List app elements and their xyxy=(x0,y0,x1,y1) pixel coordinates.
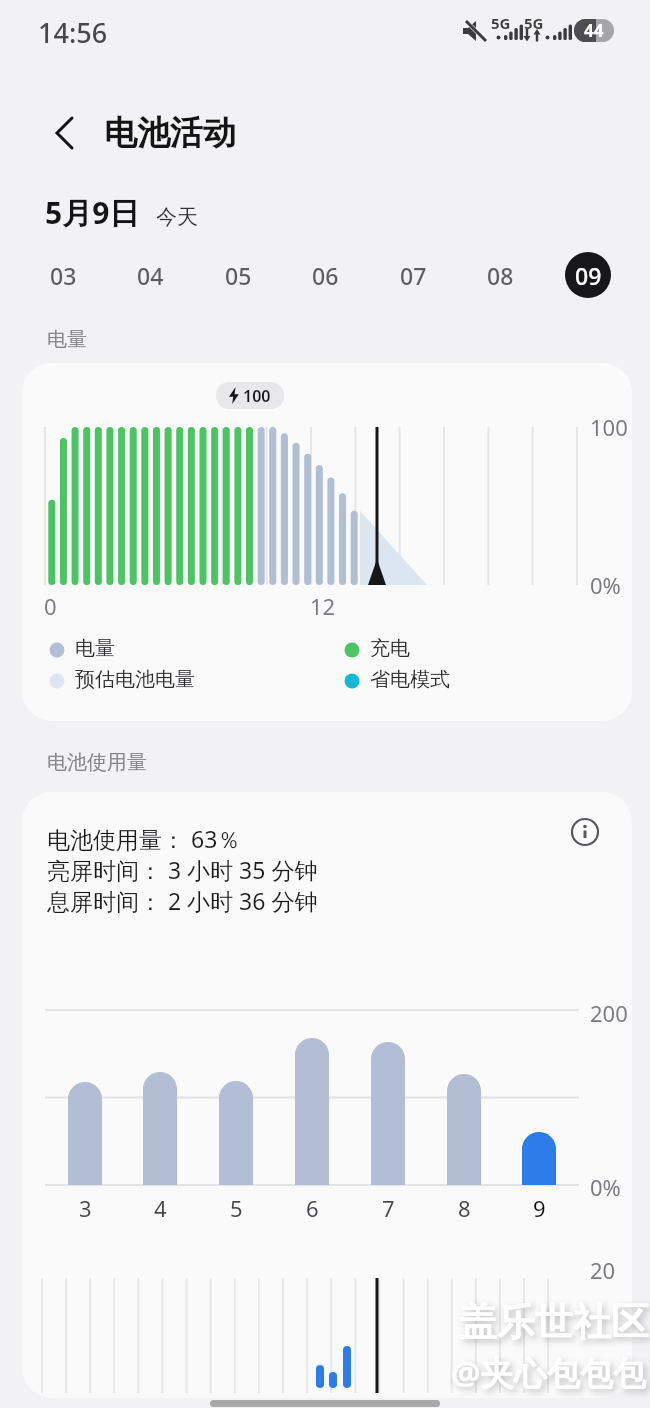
button[interactable]: 05 xyxy=(215,252,261,298)
staticText: 20 xyxy=(590,1255,616,1285)
staticText: 5G xyxy=(524,13,544,33)
staticText: 盖乐世社区 xyxy=(459,1298,649,1346)
button[interactable]: 04 xyxy=(127,252,173,298)
button[interactable]: 09 xyxy=(565,252,611,298)
staticText: 5月9日 xyxy=(45,192,140,233)
staticText: 0% xyxy=(590,1172,621,1202)
staticText: 14:56 xyxy=(38,14,108,51)
staticText: 7 xyxy=(382,1193,395,1223)
staticText: 8 xyxy=(458,1193,471,1223)
staticText: 电池使用量： 63％ xyxy=(47,823,241,854)
staticText: 电量 xyxy=(47,327,87,352)
staticText: @夹心包包包 xyxy=(451,1350,646,1395)
staticText: 06 xyxy=(312,260,339,291)
staticText: 07 xyxy=(400,260,427,291)
staticText: 100 xyxy=(243,385,271,407)
staticText: 省电模式 xyxy=(370,667,450,692)
staticText: 44 xyxy=(584,19,604,42)
staticText: 05 xyxy=(225,260,252,291)
staticText: 0% xyxy=(590,570,621,600)
button[interactable]: 06 xyxy=(302,252,348,298)
staticText: 5G xyxy=(491,13,511,33)
staticText: 100 xyxy=(590,412,628,442)
staticText: 6 xyxy=(306,1193,319,1223)
button[interactable]: 07 xyxy=(390,252,436,298)
staticText: 3 xyxy=(79,1193,92,1223)
staticText: 9 xyxy=(533,1193,546,1223)
staticText: 预估电池电量 xyxy=(75,667,195,692)
button[interactable]: 03 xyxy=(40,252,86,298)
staticText: 12 xyxy=(310,591,336,621)
staticText: 电量 xyxy=(75,636,115,661)
staticText: 今天 xyxy=(156,204,198,230)
staticText: 03 xyxy=(50,260,77,291)
staticText: 充电 xyxy=(370,636,410,661)
staticText: 亮屏时间： 3 小时 35 分钟 xyxy=(47,854,318,885)
staticText: 5 xyxy=(230,1193,243,1223)
staticText: 08 xyxy=(487,260,514,291)
staticText: 0 xyxy=(44,591,57,621)
staticText: 电池使用量 xyxy=(47,750,147,775)
button[interactable]: 08 xyxy=(477,252,523,298)
staticText: 09 xyxy=(575,260,602,291)
button[interactable] xyxy=(569,816,601,848)
button[interactable] xyxy=(42,110,88,156)
staticText: 200 xyxy=(590,998,628,1028)
staticText: 4 xyxy=(154,1193,167,1223)
staticText: 电池活动 xyxy=(104,112,236,154)
staticText: 04 xyxy=(137,260,164,291)
staticText: 息屏时间： 2 小时 36 分钟 xyxy=(47,885,318,916)
